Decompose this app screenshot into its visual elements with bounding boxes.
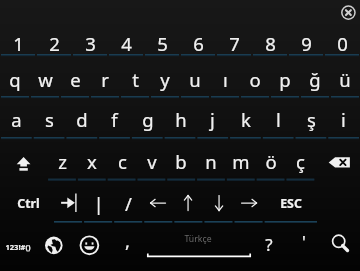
staticText: p [279, 67, 291, 92]
staticText: g [142, 107, 154, 132]
staticText: 7 [229, 31, 240, 56]
button[interactable]: Apostrophe [287, 222, 320, 271]
button[interactable] [330, 55, 360, 97]
staticText: ğ [309, 67, 321, 92]
button[interactable] [107, 138, 137, 180]
button[interactable] [252, 22, 288, 55]
staticText: t [132, 67, 139, 92]
staticText: d [76, 107, 88, 132]
button[interactable] [60, 55, 90, 97]
button[interactable] [180, 22, 216, 55]
button[interactable] [33, 97, 66, 138]
staticText: r [101, 67, 109, 92]
button[interactable] [108, 22, 144, 55]
button[interactable] [164, 97, 197, 138]
staticText: u [189, 67, 201, 92]
button[interactable]: Slash [113, 179, 143, 221]
button[interactable] [210, 55, 240, 97]
staticText: c [118, 149, 127, 174]
staticText: 8 [265, 31, 276, 56]
button[interactable] [216, 22, 252, 55]
button[interactable]: Emoji [70, 222, 108, 271]
staticText: 123!#() [5, 242, 31, 252]
button[interactable]: Tab [53, 179, 83, 221]
staticText: ş [307, 107, 316, 132]
button[interactable]: Escape [265, 179, 318, 221]
staticText: s [45, 107, 54, 132]
staticText: n [205, 149, 217, 174]
button[interactable] [256, 138, 286, 180]
button[interactable] [285, 138, 315, 180]
button[interactable]: Down [204, 179, 234, 221]
staticText: 1 [13, 31, 24, 56]
staticText: v [147, 149, 157, 174]
button[interactable] [226, 138, 256, 180]
staticText: | [93, 191, 104, 216]
staticText: 6 [193, 31, 204, 56]
button[interactable] [0, 97, 33, 138]
staticText: i [341, 107, 346, 132]
staticText: 0 [337, 31, 348, 56]
button[interactable]: Search [320, 222, 360, 271]
staticText: ' [302, 230, 306, 253]
button[interactable] [137, 138, 167, 180]
button[interactable] [36, 22, 72, 55]
button[interactable]: Comma [108, 222, 146, 271]
button[interactable]: Shift [0, 138, 47, 180]
button[interactable] [65, 97, 98, 138]
button[interactable]: Left [143, 179, 173, 221]
staticText: f [111, 107, 118, 132]
button[interactable] [229, 97, 262, 138]
button[interactable]: Pipe [83, 179, 113, 221]
staticText: 5 [157, 31, 168, 56]
button[interactable]: Space [146, 222, 252, 271]
button[interactable] [196, 138, 226, 180]
button[interactable] [77, 138, 107, 180]
button[interactable] [131, 97, 164, 138]
button[interactable] [144, 22, 180, 55]
button[interactable]: Right [234, 179, 264, 221]
button[interactable] [196, 97, 229, 138]
button[interactable] [30, 55, 60, 97]
button[interactable]: Control [0, 179, 53, 221]
button[interactable]: Backspace [315, 138, 360, 180]
staticText: w [38, 67, 53, 92]
staticText: b [175, 149, 187, 174]
staticText: ö [265, 149, 277, 174]
button[interactable] [240, 55, 270, 97]
button[interactable] [262, 97, 295, 138]
staticText: y [160, 67, 170, 92]
staticText: x [87, 149, 97, 174]
button[interactable] [180, 55, 210, 97]
button[interactable] [0, 22, 36, 55]
staticText: ç [296, 149, 305, 174]
button[interactable] [288, 22, 324, 55]
staticText: q [9, 67, 21, 92]
staticText: / [125, 191, 132, 216]
button[interactable] [270, 55, 300, 97]
button[interactable]: Question mark [252, 222, 287, 271]
button[interactable]: Symbols [0, 222, 38, 271]
button[interactable]: Change language [38, 222, 70, 271]
button[interactable] [166, 138, 196, 180]
staticText: ? [265, 233, 273, 256]
button[interactable] [0, 55, 30, 97]
staticText: m [232, 149, 250, 174]
button[interactable] [72, 22, 108, 55]
button[interactable] [300, 55, 330, 97]
staticText: j [210, 107, 215, 132]
staticText: k [241, 107, 251, 132]
button[interactable] [90, 55, 120, 97]
staticText: , [125, 228, 130, 253]
button[interactable] [295, 97, 328, 138]
button[interactable] [150, 55, 180, 97]
staticText: 2 [49, 31, 60, 56]
button[interactable]: Up [173, 179, 203, 221]
button[interactable] [98, 97, 131, 138]
button[interactable] [324, 22, 360, 55]
button[interactable] [327, 97, 360, 138]
button[interactable] [47, 138, 77, 180]
button[interactable]: Close keyboard [337, 1, 360, 24]
button[interactable] [120, 55, 150, 97]
staticText: e [70, 67, 81, 92]
